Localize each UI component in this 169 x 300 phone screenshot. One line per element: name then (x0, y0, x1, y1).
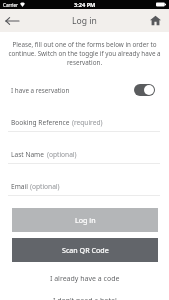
staticText: (optional) (47, 150, 77, 159)
button[interactable]: I have a reservation (11, 82, 155, 98)
button[interactable]: Email (0, 175, 169, 199)
button[interactable]: Scan QR Code (12, 238, 158, 262)
staticText: Log in (75, 215, 96, 225)
button[interactable]: Last Name (0, 143, 169, 167)
staticText: I don't need a hotel (53, 296, 117, 300)
staticText: Email (11, 182, 28, 191)
staticText: Scan QR Code (62, 245, 109, 255)
button[interactable]: I don't need a hotel (0, 294, 169, 300)
button[interactable]: Home (143, 9, 167, 32)
staticText: 3:24 PM (74, 1, 96, 9)
staticText: I already have a code (50, 274, 120, 284)
button[interactable]: Log in (12, 208, 158, 232)
button[interactable]: Back (0, 9, 24, 32)
staticText: (required) (72, 118, 103, 127)
staticText: Booking Reference (11, 118, 70, 127)
staticText: Carrier (3, 2, 18, 8)
button[interactable]: Booking Reference (0, 111, 169, 135)
button[interactable]: I already have a code (0, 272, 169, 286)
staticText: Please, fill out one of the forms below … (6, 40, 163, 67)
staticText: Last Name (11, 150, 45, 159)
staticText: (optional) (30, 182, 60, 191)
staticText: I have a reservation (11, 86, 70, 95)
staticText: Log in (72, 15, 97, 27)
